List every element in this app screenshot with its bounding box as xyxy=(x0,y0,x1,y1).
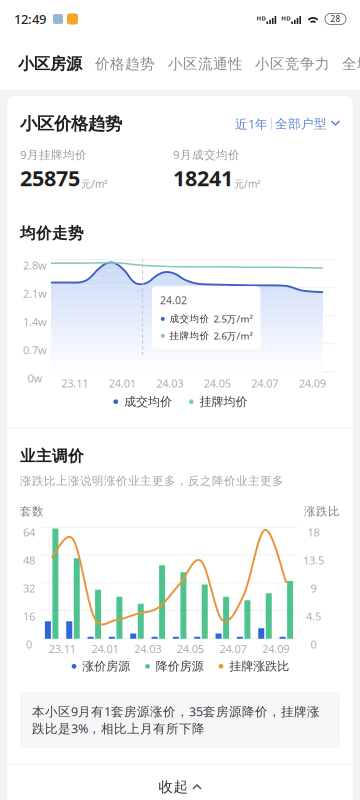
staticText: 元/m² xyxy=(81,177,108,191)
staticText: 24.01 xyxy=(91,641,118,656)
staticText: 24.02 xyxy=(160,293,187,307)
staticText: 2.1w xyxy=(23,286,47,301)
staticText: HD xyxy=(256,14,265,22)
button[interactable]: 小区竞争力 xyxy=(249,38,336,90)
staticText: 全部户型 xyxy=(275,116,327,132)
staticText: 套数 xyxy=(20,504,44,519)
staticText: 24.07 xyxy=(219,641,246,656)
button[interactable]: 小区流通性 xyxy=(162,38,249,90)
staticText: 24.03 xyxy=(134,641,161,656)
staticText: 32 xyxy=(23,581,35,596)
staticText: 挂牌均价 xyxy=(169,330,209,342)
staticText: 28 xyxy=(330,14,340,24)
staticText: 涨跌比 xyxy=(304,504,340,519)
button[interactable]: 小区房源 xyxy=(0,38,89,90)
staticText: 挂牌涨跌比 xyxy=(229,659,289,674)
staticText: 0w xyxy=(27,371,42,386)
staticText: 小区竞争力 xyxy=(255,55,330,73)
button[interactable]: 价格趋势 xyxy=(89,38,162,90)
staticText: 均价走势 xyxy=(20,224,84,243)
staticText: 成交均价 xyxy=(169,313,209,325)
staticText: 9月挂牌均价 xyxy=(20,147,87,162)
staticText: 12:49 xyxy=(14,10,46,28)
staticText: 13.5 xyxy=(303,553,324,568)
button[interactable]: 近1年 xyxy=(235,115,340,132)
staticText: 24.03 xyxy=(156,376,183,391)
button[interactable]: 全地 xyxy=(336,38,360,90)
staticText: 挂牌均价 xyxy=(199,394,247,409)
staticText: 本小区9月有1套房源涨价，35套房源降价，挂牌涨跌比是3%，相比上月有所下降 xyxy=(32,703,320,737)
staticText: 降价房源 xyxy=(156,659,204,674)
staticText: 小区价格趋势 xyxy=(20,113,122,135)
staticText: 涨跌比上涨说明涨价业主更多，反之降价业主更多 xyxy=(20,474,284,488)
button[interactable]: 收起 xyxy=(7,765,353,800)
staticText: 16 xyxy=(23,609,35,624)
staticText: 9 xyxy=(310,581,316,596)
staticText: 业主调价 xyxy=(20,446,84,466)
staticText: 近1年 xyxy=(235,115,268,132)
staticText: 2.5万/m² xyxy=(213,312,252,325)
staticText: 48 xyxy=(23,553,35,568)
staticText: 23.11 xyxy=(49,641,76,656)
staticText: 24.09 xyxy=(299,376,326,391)
staticText: 元/m² xyxy=(234,177,261,191)
staticText: 24.05 xyxy=(204,376,231,391)
staticText: 涨价房源 xyxy=(82,659,130,674)
staticText: 4.5 xyxy=(306,609,321,624)
staticText: 全地 xyxy=(342,55,360,73)
staticText: 18 xyxy=(307,525,319,540)
staticText: 23.11 xyxy=(61,376,88,391)
staticText: 25875 xyxy=(20,163,80,193)
staticText: 价格趋势 xyxy=(95,55,155,73)
staticText: 0.7w xyxy=(23,342,47,357)
staticText: 18241 xyxy=(173,163,233,193)
staticText: 64 xyxy=(23,525,35,540)
staticText: 0 xyxy=(26,637,32,652)
staticText: 24.05 xyxy=(177,641,204,656)
staticText: 24.09 xyxy=(262,641,289,656)
staticText: 9月成交均价 xyxy=(173,147,240,162)
staticText: 2.8w xyxy=(23,258,47,273)
staticText: 小区房源 xyxy=(18,54,82,74)
staticText: 2.6万/m² xyxy=(213,329,252,342)
staticText: 24.01 xyxy=(109,376,136,391)
staticText: 收起 xyxy=(158,778,188,796)
staticText: 24.07 xyxy=(251,376,278,391)
staticText: HD xyxy=(281,14,290,22)
staticText: 小区流通性 xyxy=(168,55,243,73)
staticText: 0 xyxy=(310,637,316,652)
staticText: 1.4w xyxy=(23,314,47,329)
staticText: 成交均价 xyxy=(124,394,172,409)
